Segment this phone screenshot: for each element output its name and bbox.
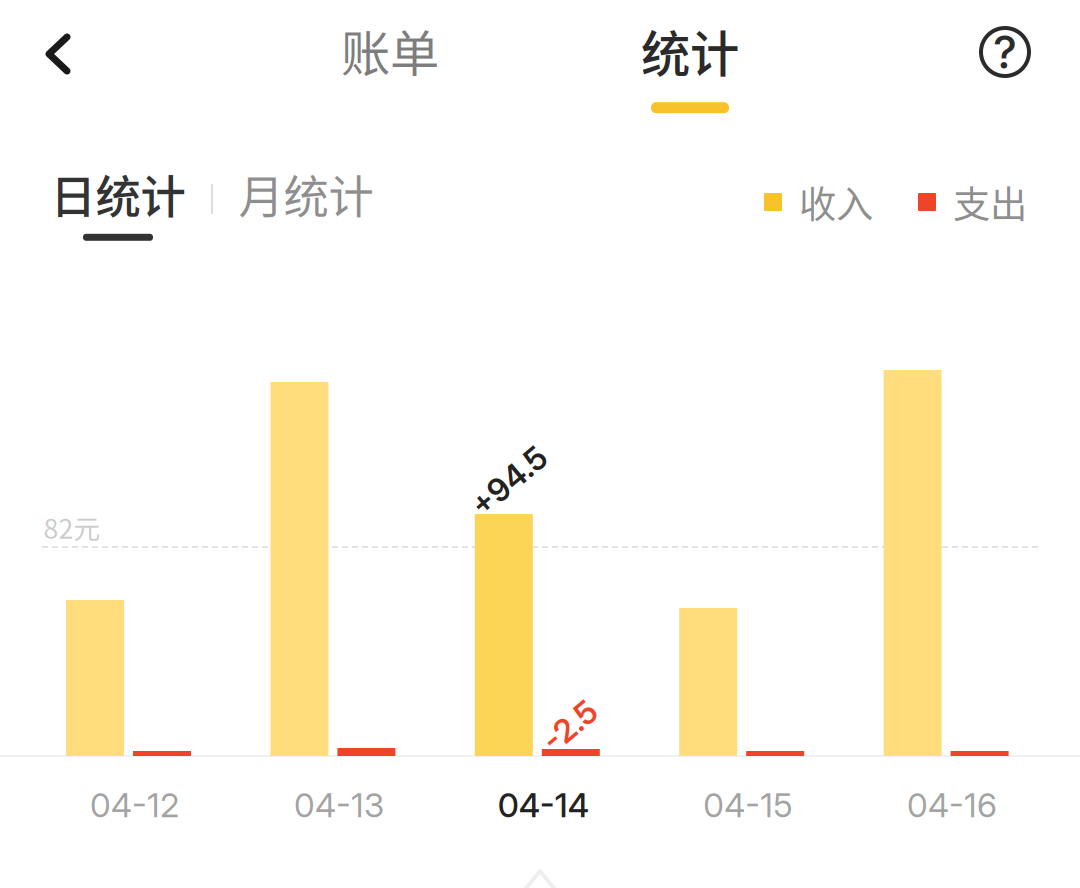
- button[interactable]: 日统计: [28, 147, 208, 255]
- staticText: 04-12: [90, 785, 179, 825]
- staticText: +94.5: [465, 462, 553, 500]
- button[interactable]: 统计: [610, 1, 770, 129]
- staticText: ?: [993, 25, 1017, 79]
- staticText: 收入: [799, 175, 873, 229]
- staticText: 月统计: [238, 161, 373, 227]
- button[interactable]: Help: [949, 0, 1061, 108]
- staticText: 账单: [341, 14, 439, 86]
- staticText: 统计: [641, 15, 739, 86]
- staticText: 日统计: [50, 161, 185, 227]
- button[interactable]: 月统计: [216, 144, 396, 244]
- staticText: 04-15: [703, 785, 792, 825]
- staticText: 支出: [953, 175, 1027, 229]
- button[interactable]: Back: [0, 2, 104, 106]
- staticText: 04-14: [498, 785, 589, 825]
- staticText: 04-13: [294, 785, 384, 825]
- staticText: 04-16: [907, 785, 997, 825]
- button[interactable]: 账单: [310, 0, 470, 110]
- staticText: -2.5: [540, 707, 600, 745]
- staticText: 82元: [43, 508, 100, 546]
